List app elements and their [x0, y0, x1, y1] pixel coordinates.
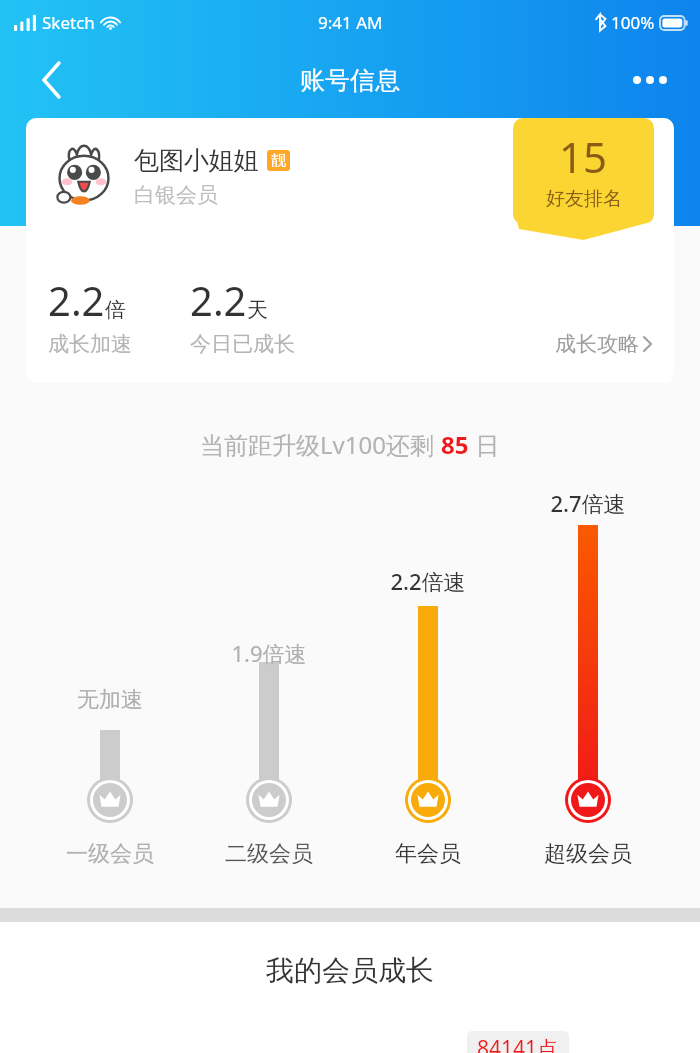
staticText: 白银会员 — [134, 182, 218, 208]
staticText: 2.7倍速 — [498, 488, 678, 518]
button[interactable]: 超级会员 — [498, 840, 678, 868]
staticText: 年会员 — [338, 840, 518, 868]
staticText: 靓 — [271, 151, 286, 170]
staticText: 2.2 — [48, 273, 105, 327]
staticText: Sketch — [42, 11, 95, 34]
staticText: 日 — [469, 428, 500, 461]
staticText: 2.2 — [190, 273, 247, 327]
staticText: 9:41 AM — [318, 11, 383, 34]
button[interactable]: Back — [28, 56, 76, 104]
button[interactable]: 一级会员 — [20, 840, 200, 868]
staticText: 85 — [441, 428, 469, 461]
staticText: 二级会员 — [179, 840, 359, 868]
staticText: 无加速 — [20, 686, 200, 714]
staticText: 2.2倍速 — [338, 566, 518, 596]
button[interactable]: 成长攻略 — [555, 331, 652, 357]
staticText: 好友排名 — [546, 187, 622, 211]
button[interactable]: More options — [626, 56, 674, 104]
staticText: 一级会员 — [20, 840, 200, 868]
staticText: 包图小姐姐 — [134, 145, 259, 176]
staticText: 成长攻略 — [555, 331, 639, 357]
staticText: 倍 — [105, 297, 126, 323]
staticText: 当前距升级Lv100还剩 — [200, 428, 441, 461]
staticText: 15 — [559, 128, 608, 185]
staticText: 我的会员成长 — [0, 953, 700, 988]
staticText: 100% — [611, 11, 655, 34]
button[interactable]: 二级会员 — [179, 840, 359, 868]
button[interactable]: 年会员 — [338, 840, 518, 868]
staticText: 今日已成长 — [190, 331, 295, 357]
staticText: 超级会员 — [498, 840, 678, 868]
staticText: 天 — [247, 297, 268, 323]
staticText: 84141点 — [477, 1034, 559, 1053]
staticText: 账号信息 — [300, 65, 400, 96]
staticText: 成长加速 — [48, 331, 132, 357]
staticText: 1.9倍速 — [179, 638, 359, 668]
